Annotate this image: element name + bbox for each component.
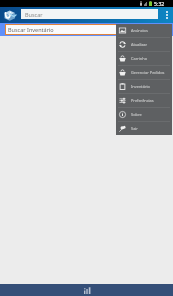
staticText: Sobre [131,112,142,117]
button[interactable]: Sobre [116,108,172,121]
staticText: Buscar [25,11,43,18]
button[interactable]: Buscar Inventário [5,24,165,35]
button[interactable]: Recents [82,285,92,295]
staticText: Anúncios [131,28,148,33]
button[interactable]: Sair [116,122,172,135]
staticText: Gerenciar Pedidos [131,70,165,75]
button[interactable]: Atualizar [116,38,172,51]
button[interactable]: Preferências [116,94,172,107]
staticText: Sair [131,126,138,131]
staticText: Inventário [131,84,150,89]
button[interactable]: Inventário [116,80,172,93]
staticText: Preferências [131,98,154,103]
button[interactable]: App logo [4,10,16,21]
button[interactable]: Gerenciar Pedidos [116,66,172,79]
button[interactable]: More options [160,7,173,23]
button[interactable]: Buscar [21,9,158,19]
staticText: Buscar Inventário [8,26,54,33]
staticText: 5:32 [154,0,165,7]
button[interactable]: Anúncios [116,24,172,37]
staticText: Atualizar [131,42,148,47]
staticText: Carrinho [131,56,148,61]
button[interactable]: Carrinho [116,52,172,65]
